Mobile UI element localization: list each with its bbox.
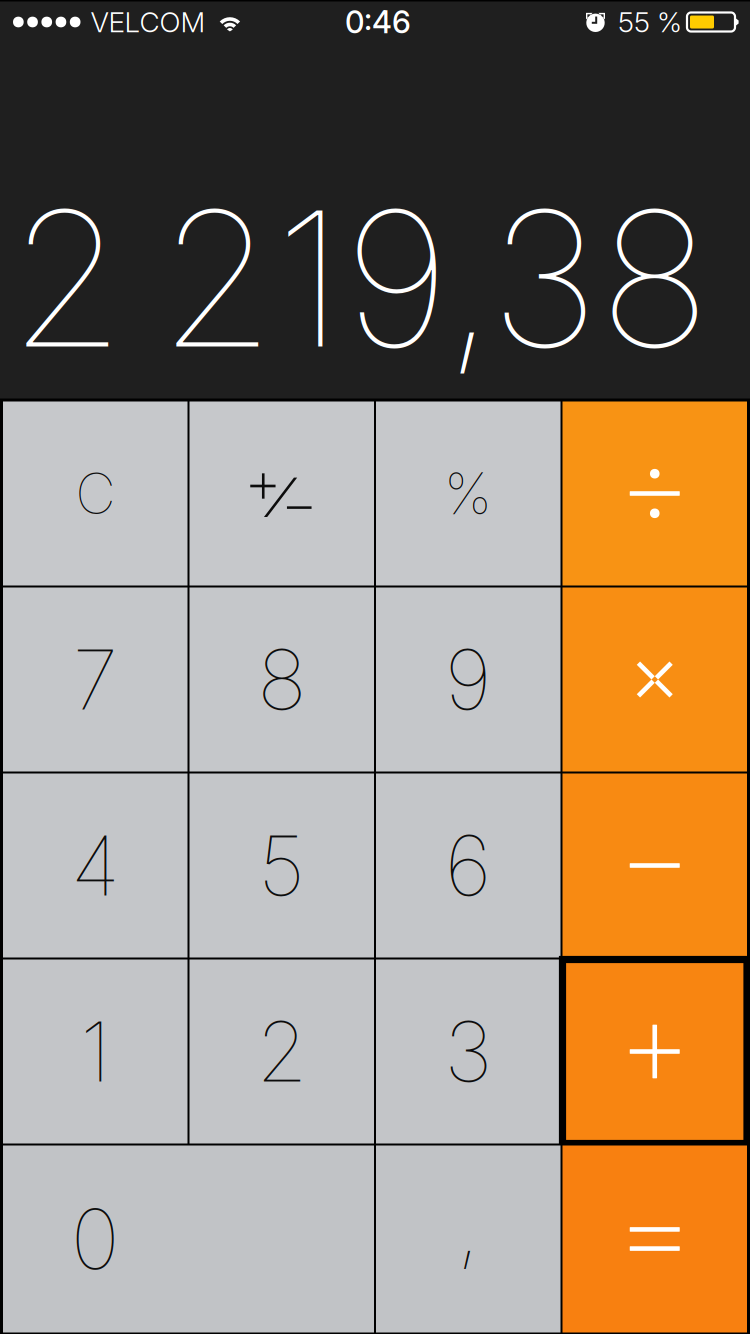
button[interactable]: 8 (189, 587, 374, 771)
button[interactable]: 5 (189, 773, 374, 957)
button[interactable]: 7 (3, 587, 187, 771)
staticText: C (75, 460, 115, 527)
staticText: VELCOM (90, 5, 205, 39)
button[interactable]: 4 (3, 773, 187, 957)
staticText: 0 (71, 1189, 120, 1289)
button[interactable]: Equals (562, 1145, 747, 1332)
button[interactable]: Clear (3, 401, 187, 585)
button[interactable]: 2 (189, 959, 374, 1143)
button[interactable]: , (376, 1145, 560, 1332)
staticText: 4 (71, 815, 120, 915)
staticText: 1 (80, 1001, 110, 1101)
staticText: 6 (445, 815, 492, 915)
staticText: , (457, 1177, 479, 1277)
button[interactable]: 6 (376, 773, 560, 957)
button[interactable]: 9 (376, 587, 560, 771)
staticText: 7 (73, 629, 118, 729)
staticText: % (444, 459, 493, 528)
staticText: 3 (444, 1001, 492, 1101)
staticText: 5 (258, 815, 305, 915)
staticText: 55 % (618, 5, 682, 39)
button[interactable]: 3 (376, 959, 560, 1143)
button[interactable]: Add (562, 959, 747, 1143)
staticText: 2 219,38 (9, 166, 710, 391)
staticText: 8 (257, 629, 306, 729)
staticText: 2 (256, 1001, 307, 1101)
button[interactable]: 0 (3, 1145, 374, 1332)
button[interactable]: Divide (562, 401, 747, 585)
button[interactable]: Percent (376, 401, 560, 585)
button[interactable]: Subtract (562, 773, 747, 957)
staticText: 9 (445, 629, 492, 729)
button[interactable]: Multiply (562, 587, 747, 771)
button[interactable]: 1 (3, 959, 187, 1143)
staticText: 0:46 (345, 3, 411, 40)
button[interactable]: Plus minus (189, 401, 374, 585)
